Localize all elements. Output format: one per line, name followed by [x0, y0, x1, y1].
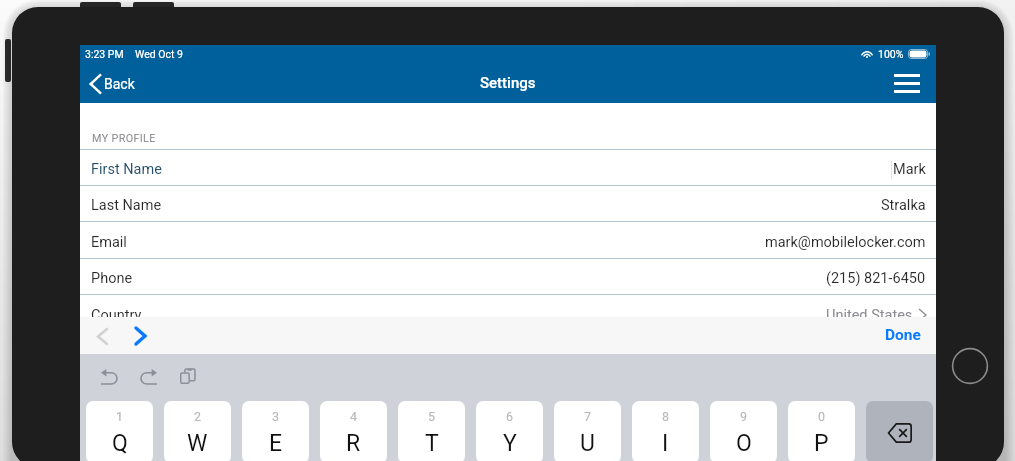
button[interactable]: 6 [476, 401, 543, 461]
staticText: Y [503, 430, 517, 457]
staticText: mark@mobilelocker.com [765, 234, 926, 251]
button[interactable]: Backspace [866, 401, 933, 461]
button[interactable]: 3 [242, 401, 309, 461]
staticText: Done [885, 326, 921, 344]
button[interactable]: Menu [894, 74, 936, 103]
staticText: 4 [350, 409, 358, 424]
button[interactable]: State [80, 331, 936, 367]
staticText: Stralka [881, 197, 926, 214]
button[interactable]: Undo [101, 369, 119, 384]
staticText: E [269, 430, 283, 457]
staticText: I [662, 430, 669, 457]
staticText: O [736, 430, 752, 457]
button[interactable]: 1 [86, 401, 153, 461]
staticText: MY PROFILE [92, 132, 156, 145]
staticText: 5 [428, 409, 436, 424]
staticText: Country [91, 307, 142, 324]
staticText: Last Name [91, 197, 162, 214]
button[interactable]: Paste [180, 369, 195, 384]
staticText: 9 [740, 409, 748, 424]
staticText: Email [91, 234, 127, 251]
staticText: 1 [116, 409, 124, 424]
button[interactable]: Redo [139, 369, 157, 384]
staticText: T [425, 430, 439, 457]
button[interactable]: First Name [80, 149, 936, 185]
staticText: Wed Oct 9 [135, 48, 183, 60]
staticText: Q [112, 430, 128, 457]
staticText: Settings [480, 74, 536, 92]
staticText: (215) 821-6450 [826, 270, 926, 287]
button[interactable]: Last Name [80, 185, 936, 221]
button[interactable]: 0 [788, 401, 855, 461]
staticText: U [580, 430, 595, 457]
button[interactable]: Phone [80, 258, 936, 294]
staticText: 100% [878, 48, 904, 60]
staticText: Pennsylvania [828, 343, 913, 360]
button[interactable]: 9 [710, 401, 777, 461]
staticText: P [814, 430, 829, 457]
staticText: W [187, 430, 208, 457]
button[interactable]: Back [80, 65, 143, 103]
staticText: Back [104, 76, 135, 92]
staticText: State [91, 343, 125, 360]
button[interactable]: Next field [125, 319, 155, 353]
button[interactable]: Country [80, 294, 936, 331]
staticText: United States [826, 307, 913, 324]
staticText: First Name [91, 161, 162, 178]
button[interactable]: 7 [554, 401, 621, 461]
staticText: R [346, 430, 361, 457]
button[interactable]: Done [868, 322, 936, 350]
staticText: 3:23 PM [85, 48, 124, 60]
staticText: 2 [194, 409, 202, 424]
staticText: Phone [91, 270, 133, 287]
staticText: 0 [818, 409, 826, 424]
staticText: 7 [584, 409, 592, 424]
button[interactable]: 2 [164, 401, 231, 461]
button[interactable]: 8 [632, 401, 699, 461]
button[interactable]: 5 [398, 401, 465, 461]
staticText: 6 [506, 409, 514, 424]
button[interactable]: Email [80, 221, 936, 258]
staticText: 3 [272, 409, 280, 424]
staticText: Mark [893, 161, 926, 178]
button[interactable]: 4 [320, 401, 387, 461]
button[interactable]: Previous field [87, 319, 117, 353]
staticText: 8 [662, 409, 670, 424]
